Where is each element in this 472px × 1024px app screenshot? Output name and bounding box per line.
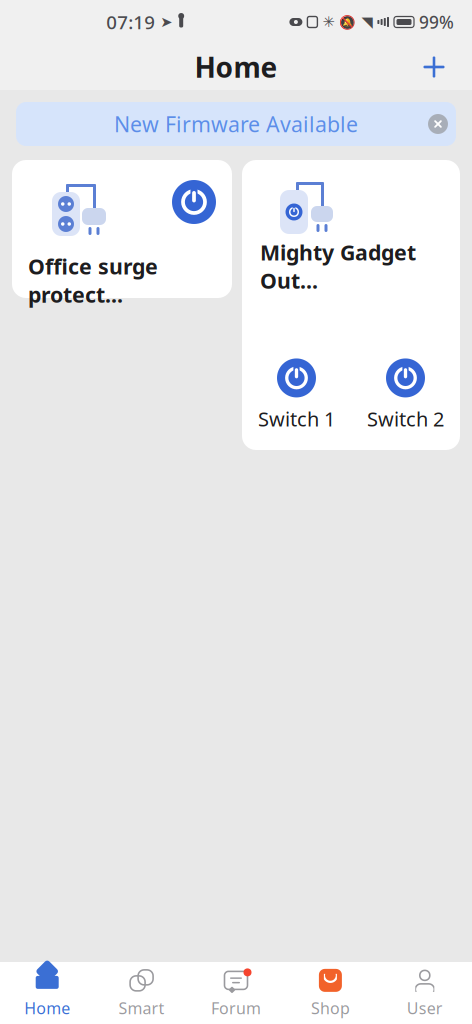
button[interactable]: Smart <box>94 962 189 1024</box>
staticText: ✳ <box>322 14 334 30</box>
button[interactable]: User <box>378 962 472 1024</box>
staticText: Shop <box>311 997 350 1019</box>
staticText: Home <box>24 997 70 1019</box>
staticText: Smart <box>119 997 165 1019</box>
button[interactable]: Mighty Gadget Out... <box>242 160 460 450</box>
button[interactable]: Shop <box>283 962 378 1024</box>
staticText: 🔕 <box>339 14 356 30</box>
staticText: Office surge protect... <box>28 252 158 309</box>
button[interactable]: Switch 1 <box>242 358 351 432</box>
staticText: 99% <box>419 10 454 33</box>
staticText: Forum <box>211 997 261 1019</box>
staticText: 07:19 <box>106 10 155 34</box>
staticText: Home <box>194 48 277 86</box>
staticText: ➤ <box>160 14 172 30</box>
button[interactable]: Home <box>0 962 94 1024</box>
button[interactable]: Dismiss firmware notice <box>420 106 456 142</box>
button[interactable]: Switch 2 <box>351 358 460 432</box>
staticText: ◥ <box>361 14 372 30</box>
staticText: User <box>407 997 443 1019</box>
button[interactable]: Forum <box>189 962 283 1024</box>
staticText: Mighty Gadget Out... <box>260 238 416 295</box>
button[interactable]: Office surge protect... <box>12 160 232 298</box>
button[interactable]: Add device <box>412 45 456 89</box>
staticText: Switch 2 <box>367 405 444 432</box>
staticText: Switch 1 <box>258 405 335 432</box>
staticText: New Firmware Available <box>114 110 358 138</box>
